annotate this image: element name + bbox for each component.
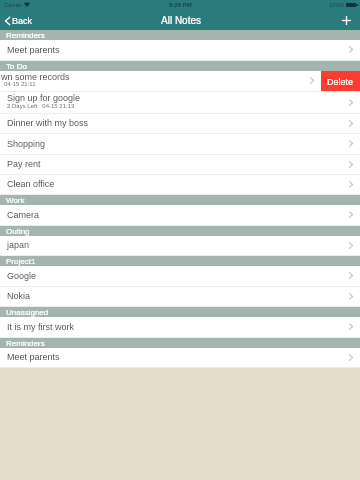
button[interactable]: Meet parents [0, 348, 360, 368]
staticText: Reminders [6, 31, 45, 40]
staticText: Back [12, 16, 33, 26]
staticText: Clean office [7, 179, 55, 189]
staticText: 100% [329, 2, 345, 9]
button[interactable]: Google [0, 266, 360, 287]
staticText: Shopping [7, 139, 46, 149]
staticText: japan [7, 240, 30, 250]
staticText: Unassigned [6, 308, 49, 317]
button[interactable]: Nokia [0, 287, 360, 307]
button[interactable]: It is my first work [0, 317, 360, 338]
button[interactable]: Delete [321, 71, 360, 92]
button[interactable]: Clean office [0, 175, 360, 195]
staticText: Nokia [7, 291, 31, 301]
button[interactable]: Sign up for google [0, 92, 360, 114]
staticText: Sign up for google [7, 93, 81, 103]
button[interactable]: Back [0, 11, 41, 30]
staticText: Delete [327, 77, 354, 87]
staticText: Reminders [6, 339, 45, 348]
button[interactable]: Camera [0, 205, 360, 226]
staticText: wn some records [1, 72, 70, 82]
staticText: Camera [7, 210, 40, 220]
staticText: Outing [6, 227, 30, 236]
staticText: 04-15 21:11 [4, 81, 36, 88]
staticText: All Notes [161, 15, 202, 26]
staticText: Pay rent [7, 159, 41, 169]
staticText: Meet parents [7, 45, 60, 55]
staticText: It is my first work [7, 322, 74, 332]
button[interactable]: Add note [334, 11, 360, 30]
staticText: Project1 [6, 257, 36, 266]
button[interactable]: wn some records [0, 71, 360, 92]
button[interactable]: japan [0, 236, 360, 256]
staticText: 9:29 PM [169, 2, 192, 9]
staticText: To Do [6, 62, 27, 71]
button[interactable]: Shopping [0, 134, 360, 155]
staticText: Work [6, 196, 25, 205]
staticText: 2 Days Left 04-15 21:13 [7, 103, 75, 110]
button[interactable]: Dinner with my boss [0, 114, 360, 134]
button[interactable]: Pay rent [0, 155, 360, 175]
staticText: Dinner with my boss [7, 118, 89, 128]
button[interactable]: Meet parents [0, 40, 360, 61]
staticText: Meet parents [7, 352, 60, 362]
staticText: Google [7, 271, 37, 281]
staticText: Carrier [4, 2, 23, 9]
